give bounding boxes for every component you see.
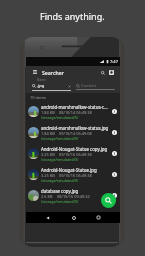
button[interactable]: Info [110,128,119,137]
button[interactable]: Info [110,191,119,200]
staticText: android-marshmallow-status-c... [41,104,108,110]
staticText: 08/10/14 06:49:38 [59,110,92,115]
staticText: 10 items [30,95,47,100]
staticText: 09/15/16 06:49:38 [59,152,92,157]
button[interactable]: Recents [94,213,103,222]
button[interactable]: Search [101,193,116,208]
staticText: database copy.jpg [41,188,79,194]
staticText: /storage/emulated/0/duplicatesimages/ [41,136,109,141]
button[interactable]: Home [69,213,78,222]
staticText: 2.6 KB [41,194,53,199]
button[interactable]: Android-Nougat-Statue copy.jpg [26,143,120,164]
staticText: Android-Nougat-Statue copy.jpg [41,146,108,152]
staticText: 09/15/16 06:49:38 [59,173,92,178]
button[interactable]: database copy.jpg [26,185,120,206]
button[interactable]: android-marshmallow-status.jpg [26,122,120,143]
staticText: Searcher [42,69,64,76]
staticText: Content [81,83,97,88]
button[interactable]: Back [43,213,52,222]
staticText: 1.84 KB [41,110,55,115]
staticText: Finds anything. [40,10,105,22]
staticText: /storage/emulated/0/duplicatesimages/ [41,178,109,183]
staticText: 7:47 [110,59,118,64]
staticText: 1.84 KB [41,131,55,136]
staticText: android-marshmallow-status.jpg [41,125,109,131]
staticText: 09/10/14 06:49:08 [59,131,92,136]
button[interactable]: Info [110,107,119,116]
staticText: 08/15/16 09:49:32 [57,194,90,199]
button[interactable]: Menu [29,66,40,78]
staticText: /storage/emulated/0/duplicatesimages/ [41,157,109,162]
button[interactable]: Android-Nougat-Statue.jpg [26,164,120,185]
staticText: 3.25 KB [41,173,55,178]
staticText: Name [37,78,46,82]
staticText: .jpg [37,83,45,89]
button[interactable]: Info [110,149,119,158]
button[interactable]: android-marshmallow-status-c... [26,101,120,122]
staticText: Android-Nougat-Statue.jpg [41,167,97,173]
staticText: /storage/emulated/0/duplicatesimages/ [41,199,109,204]
staticText: 3.25 KB [41,152,55,157]
staticText: /storage/emulated/0/duplicatesimages/ [41,115,109,120]
button[interactable]: Search [98,68,107,77]
button[interactable]: Take photo [107,68,116,77]
button[interactable]: Info [110,170,119,179]
